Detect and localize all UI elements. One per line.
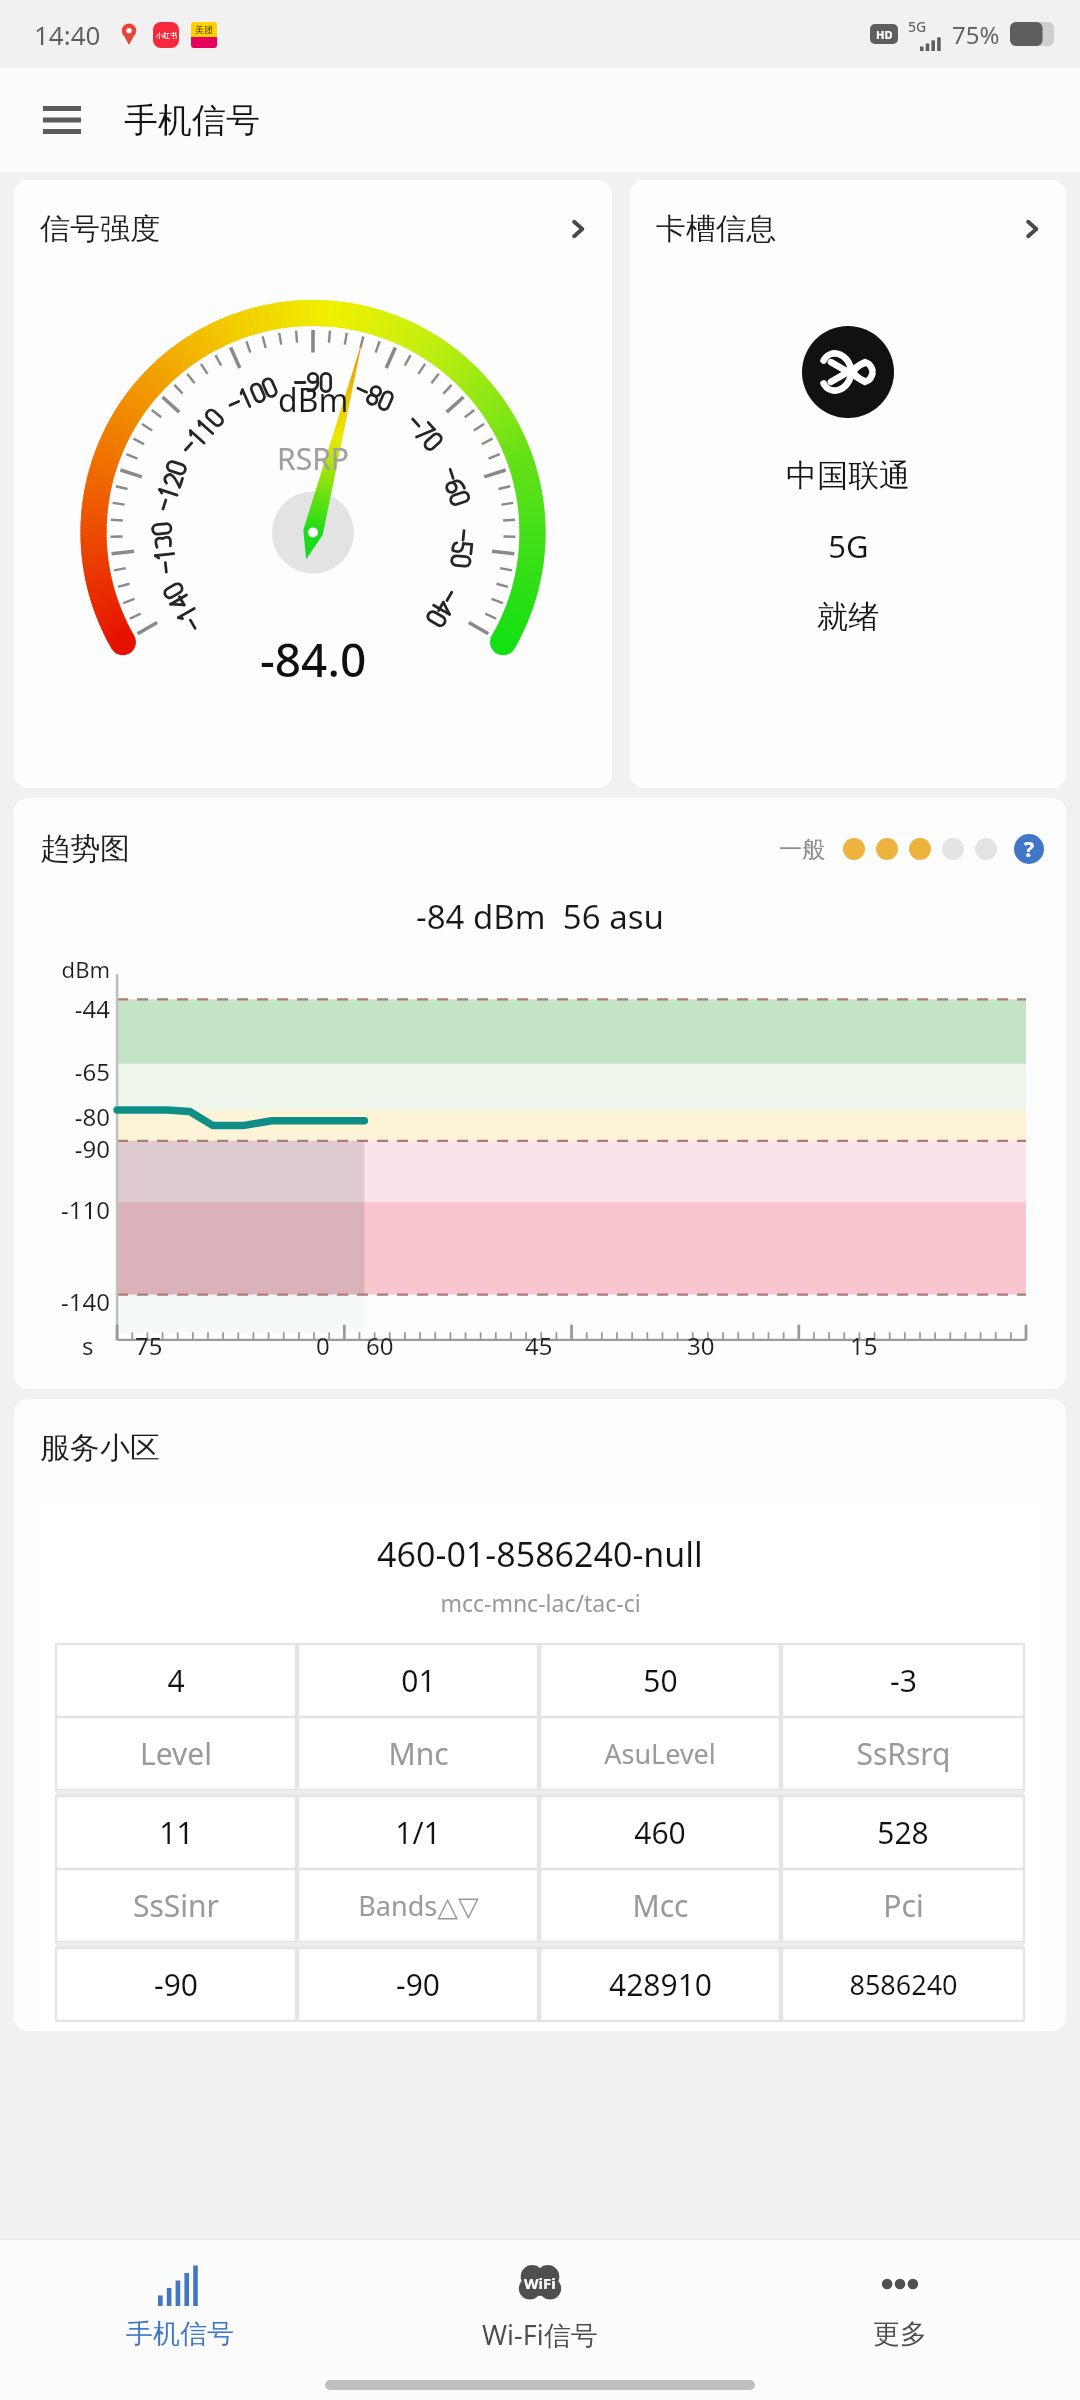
staticText: 11 <box>159 1812 194 1853</box>
staticText: -84 dBm 56 asu <box>416 894 664 939</box>
staticText: 528 <box>877 1812 929 1853</box>
staticText: -90 <box>396 1964 440 2005</box>
staticText: 30 <box>687 1329 715 1362</box>
staticText: SsSinr <box>133 1885 219 1926</box>
staticText: Level <box>140 1733 212 1774</box>
button[interactable]: Help <box>1014 834 1044 864</box>
staticText: -84.0 <box>260 628 367 691</box>
other: 卡槽信息 <box>1020 217 1044 241</box>
staticText: 460 <box>634 1812 686 1853</box>
button[interactable]: 更多 <box>720 2240 1080 2370</box>
staticText: 14:40 <box>34 17 101 52</box>
other: 信号强度 <box>566 217 590 241</box>
staticText: -65 <box>14 1055 110 1088</box>
button[interactable]: WiFi <box>360 2240 720 2370</box>
staticText: 75% <box>952 18 1000 51</box>
button[interactable]: 信号强度 <box>14 180 612 788</box>
staticText: -110 <box>14 1193 110 1226</box>
staticText: 一般 <box>779 835 825 864</box>
staticText: mcc-mnc-lac/tac-ci <box>440 1587 641 1618</box>
staticText: RSRP <box>277 438 349 479</box>
staticText: 15 <box>850 1329 878 1362</box>
staticText: 就绪 <box>817 597 879 636</box>
staticText: 50 <box>643 1660 678 1701</box>
staticText: 45 <box>525 1329 553 1362</box>
staticText: 460-01-8586240-null <box>377 1531 703 1577</box>
staticText: 60 <box>366 1329 394 1362</box>
staticText: 服务小区 <box>40 1429 160 1467</box>
staticText: HD <box>876 27 893 42</box>
staticText: dBm <box>14 954 110 984</box>
staticText: 0 <box>316 1329 330 1362</box>
staticText: 8586240 <box>849 1966 958 2003</box>
staticText: dBm <box>278 378 349 422</box>
staticText: s <box>82 1329 94 1362</box>
staticText: SsRsrq <box>856 1733 951 1774</box>
staticText: 4 <box>167 1660 185 1701</box>
staticText: AsuLevel <box>604 1735 716 1772</box>
staticText: 5G <box>828 525 869 567</box>
staticText: 更多 <box>873 2317 927 2351</box>
staticText: Bands△▽ <box>358 1887 479 1924</box>
staticText: 小红书 <box>156 31 177 40</box>
staticText: 美团 <box>195 24 213 35</box>
staticText: WiFi <box>524 2273 556 2293</box>
staticText: 中国联通 <box>786 456 910 495</box>
staticText: 01 <box>401 1660 436 1701</box>
staticText: 手机信号 <box>126 2317 234 2351</box>
staticText: 信号强度 <box>40 210 160 248</box>
staticText: -44 <box>14 992 110 1025</box>
staticText: 卡槽信息 <box>656 210 776 248</box>
button[interactable]: 卡槽信息 <box>630 180 1066 788</box>
button[interactable]: 趋势图 <box>14 798 1066 1389</box>
staticText: -3 <box>890 1660 917 1701</box>
staticText: 手机信号 <box>124 99 260 142</box>
staticText: ? <box>1024 835 1035 864</box>
staticText: Wi-Fi信号 <box>482 2316 598 2353</box>
staticText: -80 <box>14 1100 110 1133</box>
button[interactable]: 手机信号 <box>0 2240 360 2370</box>
staticText: -90 <box>14 1132 110 1165</box>
staticText: -140 <box>14 1285 110 1318</box>
staticText: 5G <box>908 17 927 36</box>
staticText: Pci <box>883 1885 924 1926</box>
staticText: -90 <box>154 1964 198 2005</box>
staticText: 428910 <box>609 1964 712 2005</box>
staticText: 趋势图 <box>40 830 130 868</box>
button[interactable]: Menu <box>30 88 94 152</box>
staticText: 1/1 <box>395 1812 441 1853</box>
staticText: Mcc <box>632 1885 689 1926</box>
staticText: 75 <box>135 1329 163 1362</box>
staticText: Mnc <box>388 1733 449 1774</box>
